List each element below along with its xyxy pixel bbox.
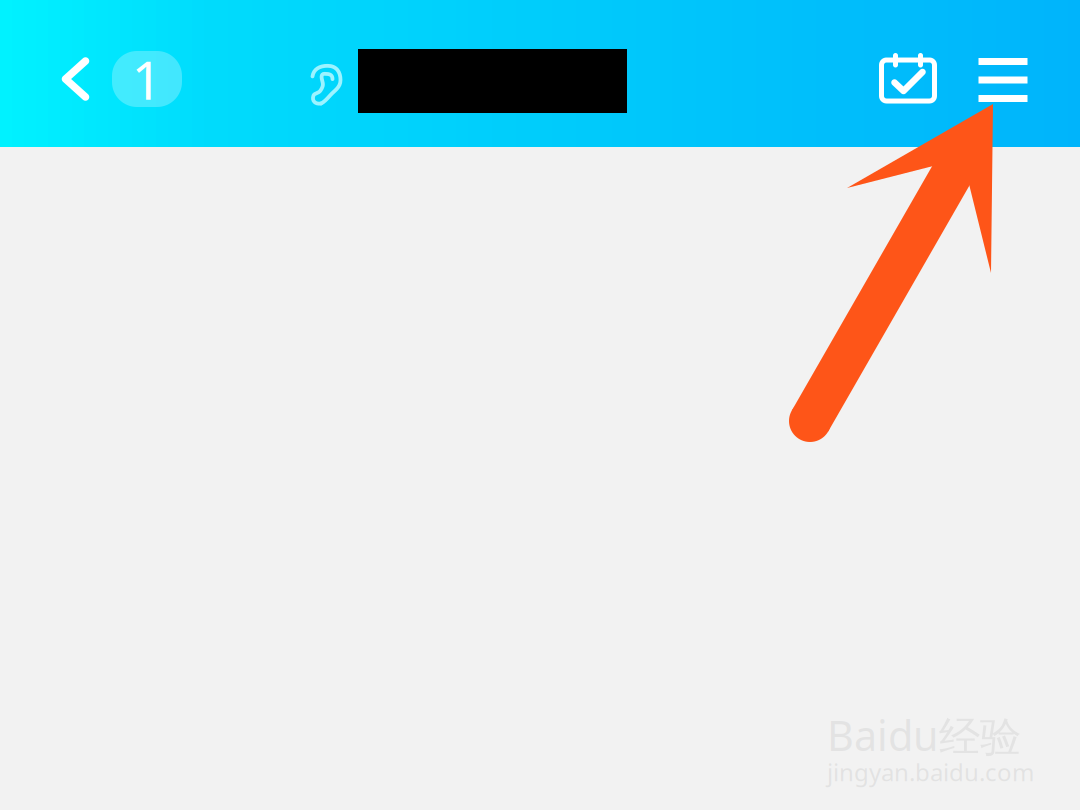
button[interactable]: Back bbox=[43, 48, 105, 110]
button[interactable]: Calendar bbox=[872, 47, 944, 109]
button[interactable]: Menu bbox=[967, 49, 1039, 111]
staticText: jingyan.baidu.com bbox=[827, 756, 1034, 788]
button[interactable]: Hearing bbox=[299, 56, 355, 114]
staticText: Baidu经验 bbox=[827, 707, 1021, 762]
staticText: 1 bbox=[131, 44, 162, 114]
button[interactable]: 1 bbox=[112, 51, 182, 107]
